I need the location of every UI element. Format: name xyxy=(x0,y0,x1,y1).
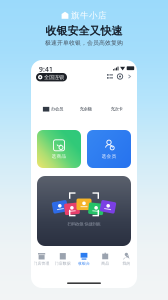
staticText: 选会员 xyxy=(101,153,116,159)
staticText: 选商品 xyxy=(51,153,66,159)
staticText: 收银安全又快速 xyxy=(45,24,122,38)
staticText: 充次卡 xyxy=(110,106,122,112)
button[interactable]: 列表 xyxy=(107,73,113,79)
staticText: 扫码收银 快捷到账 xyxy=(67,221,100,227)
button[interactable]: 全国连锁 xyxy=(36,73,67,81)
button[interactable]: 我的 xyxy=(116,252,137,266)
staticText: 全国连锁 xyxy=(44,74,64,80)
staticText: 我的 xyxy=(122,261,130,266)
button[interactable]: 收银台 xyxy=(73,252,95,266)
button[interactable]: 充余额 xyxy=(72,103,99,115)
staticText: 门店管理 xyxy=(34,261,50,266)
button[interactable]: 扫一扫 xyxy=(117,73,123,79)
staticText: 门店数据 xyxy=(55,261,71,266)
button[interactable]: 门店数据 xyxy=(52,252,73,266)
button[interactable]: 办会员 xyxy=(38,103,68,115)
staticText: 极速开单收银，会员高效复购 xyxy=(45,39,123,46)
staticText: 办会员 xyxy=(51,106,63,112)
staticText: 旗牛小店 xyxy=(71,10,107,21)
staticText: 商品 xyxy=(101,261,109,266)
button[interactable]: 充次卡 xyxy=(103,103,130,115)
staticText: 9:41 xyxy=(39,64,53,74)
button[interactable]: 门店管理 xyxy=(31,252,52,266)
staticText: 收银台 xyxy=(78,261,90,266)
button[interactable]: 选会员 xyxy=(87,130,131,168)
staticText: 充余额 xyxy=(79,106,91,112)
button[interactable]: 选商品 xyxy=(37,130,81,168)
button[interactable]: 商品 xyxy=(95,252,116,266)
button[interactable]: 更多 xyxy=(127,73,133,79)
